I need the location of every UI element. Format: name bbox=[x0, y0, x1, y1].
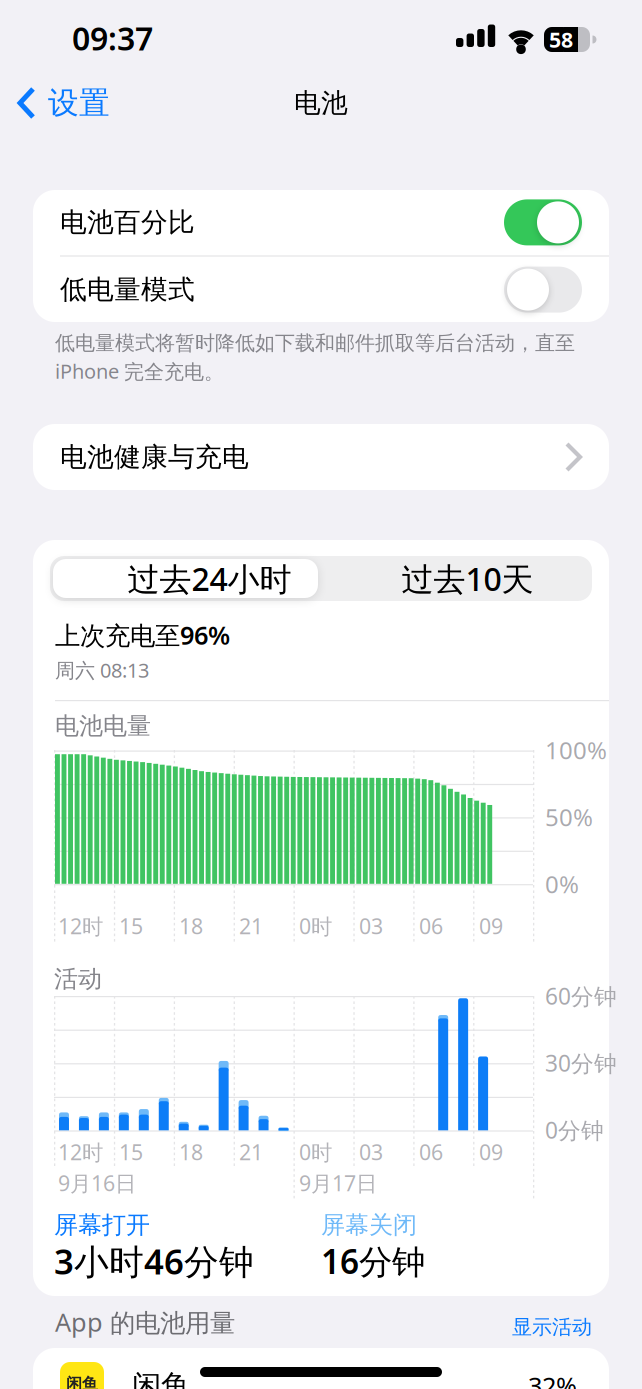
staticText: 21 bbox=[239, 912, 263, 940]
button[interactable]: 电池健康与充电 bbox=[33, 424, 609, 490]
staticText: 屏幕关闭 bbox=[321, 1210, 417, 1240]
staticText: 0分钟 bbox=[545, 1115, 604, 1145]
button[interactable]: 返回设置 bbox=[0, 0, 160, 60]
button[interactable]: 过去10天 bbox=[323, 556, 590, 601]
staticText: 09 bbox=[479, 912, 503, 940]
button[interactable]: 低电量模式 bbox=[33, 257, 609, 323]
staticText: 9月16日 bbox=[58, 1169, 136, 1197]
button[interactable]: 过去24小时 bbox=[52, 556, 319, 601]
staticText: 50% bbox=[545, 801, 593, 833]
staticText: 0% bbox=[545, 868, 579, 900]
button[interactable]: 显示活动 bbox=[432, 1305, 592, 1349]
staticText: 0时 bbox=[299, 912, 332, 940]
staticText: 周六 08:13 bbox=[55, 657, 149, 683]
staticText: 低电量模式 bbox=[60, 273, 195, 306]
staticText: 06 bbox=[419, 1138, 443, 1166]
staticText: 9月17日 bbox=[299, 1169, 377, 1197]
staticText: 0时 bbox=[299, 1138, 332, 1166]
staticText: 12时 bbox=[58, 1138, 103, 1166]
staticText: iPhone 完全充电。 bbox=[55, 358, 224, 384]
staticText: 06 bbox=[419, 912, 443, 940]
staticText: 18 bbox=[179, 912, 203, 940]
staticText: 闲鱼 bbox=[132, 1368, 190, 1389]
staticText: 闲鱼 bbox=[66, 1374, 98, 1389]
staticText: 03 bbox=[359, 912, 383, 940]
staticText: 电池百分比 bbox=[60, 206, 195, 239]
staticText: 电池电量 bbox=[55, 711, 151, 741]
staticText: 显示活动 bbox=[512, 1315, 592, 1339]
staticText: 上次充电至96% bbox=[55, 618, 230, 652]
staticText: 屏幕打开 bbox=[54, 1210, 150, 1240]
staticText: 低电量模式将暂时降低如下载和邮件抓取等后台活动，直至 bbox=[55, 331, 575, 355]
staticText: 15 bbox=[119, 1138, 143, 1166]
staticText: 电池健康与充电 bbox=[60, 441, 249, 473]
staticText: 09:37 bbox=[72, 17, 153, 59]
staticText: 21 bbox=[239, 1138, 263, 1166]
staticText: 09 bbox=[479, 1138, 503, 1166]
button[interactable]: 闲鱼 bbox=[33, 1348, 609, 1389]
staticText: 32% bbox=[528, 1369, 577, 1389]
staticText: 100% bbox=[545, 734, 607, 766]
staticText: 60分钟 bbox=[545, 981, 617, 1011]
staticText: 设置 bbox=[48, 84, 110, 122]
button[interactable]: 电池百分比 bbox=[33, 189, 609, 255]
staticText: 03 bbox=[359, 1138, 383, 1166]
staticText: App 的电池用量 bbox=[55, 1305, 235, 1339]
staticText: 30分钟 bbox=[545, 1048, 617, 1078]
staticText: 3小时46分钟 bbox=[54, 1238, 254, 1284]
staticText: 18 bbox=[179, 1138, 203, 1166]
staticText: 过去24小时 bbox=[127, 557, 291, 600]
staticText: 活动 bbox=[54, 964, 102, 994]
staticText: 16分钟 bbox=[321, 1239, 425, 1283]
staticText: 58 bbox=[549, 25, 573, 54]
staticText: 15 bbox=[119, 912, 143, 940]
staticText: 电池 bbox=[294, 87, 348, 119]
staticText: 12时 bbox=[58, 912, 103, 940]
staticText: 过去10天 bbox=[401, 557, 533, 600]
